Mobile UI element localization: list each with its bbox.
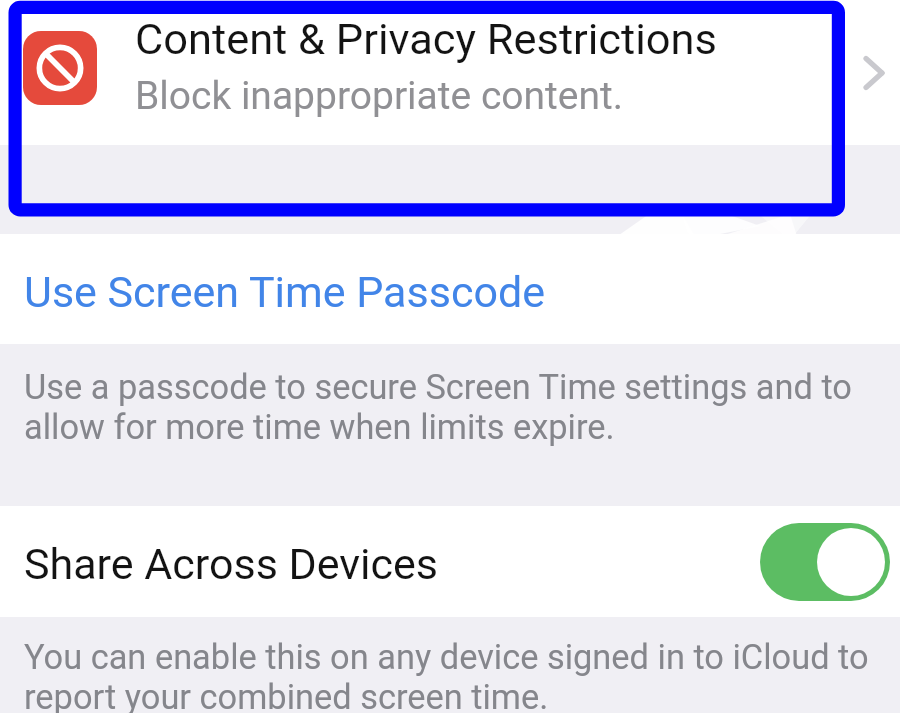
staticText: Content & Privacy Restrictions bbox=[135, 14, 717, 65]
button[interactable]: Content & Privacy Restrictions bbox=[0, 0, 900, 145]
button[interactable]: Use Screen Time Passcode bbox=[0, 234, 900, 344]
staticText: Use a passcode to secure Screen Time set… bbox=[24, 367, 875, 448]
staticText: Use Screen Time Passcode bbox=[24, 267, 545, 317]
button[interactable]: Share Across Devices bbox=[0, 506, 900, 617]
staticText: Block inappropriate content. bbox=[135, 73, 624, 119]
button[interactable]: Share Across Devices toggle bbox=[760, 523, 890, 601]
staticText: Share Across Devices bbox=[24, 539, 439, 589]
staticText: You can enable this on any device signed… bbox=[24, 637, 875, 713]
